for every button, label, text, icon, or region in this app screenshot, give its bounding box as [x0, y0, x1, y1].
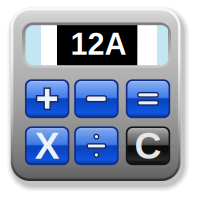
- staticText: X: [35, 125, 60, 167]
- button[interactable]: Multiply: [0, 0, 200, 200]
- staticText: 12A: [71, 27, 127, 61]
- button[interactable]: Plus: [0, 0, 200, 200]
- button[interactable]: Divide: [0, 0, 200, 200]
- button[interactable]: Clear: [0, 0, 200, 200]
- button[interactable]: Equals: [0, 0, 200, 200]
- button[interactable]: Minus: [0, 0, 200, 200]
- staticText: C: [134, 125, 161, 167]
